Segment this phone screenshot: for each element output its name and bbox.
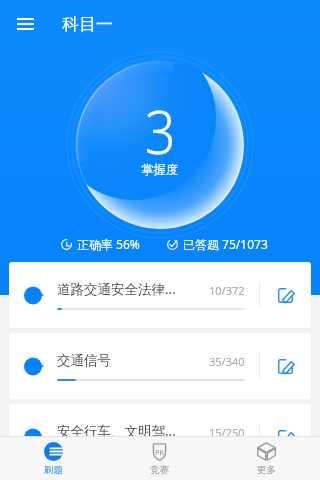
staticText: PK [155, 447, 165, 457]
staticText: 更多 [257, 464, 276, 476]
staticText: 安全行车、文明驾... [57, 422, 203, 440]
staticText: 3 [145, 90, 176, 172]
staticText: 35/340 [209, 354, 245, 369]
button[interactable]: 安全行车、文明驾... [9, 404, 311, 470]
staticText: 交通信号 [57, 352, 203, 369]
staticText: 掌握度 [141, 162, 179, 178]
staticText: 刷题 [44, 464, 63, 476]
staticText: 15/250 [209, 425, 245, 440]
button[interactable]: 交通信号 [9, 333, 311, 399]
staticText: 竞赛 [150, 464, 169, 476]
button[interactable]: Menu [0, 0, 42, 48]
staticText: 已答题 75/1073 [183, 236, 268, 252]
button[interactable]: Edit [260, 404, 311, 470]
button[interactable]: 更多 [213, 437, 320, 480]
staticText: 10/372 [209, 283, 245, 298]
button[interactable]: 道路交通安全法律... [9, 262, 311, 328]
staticText: 正确率 56% [77, 236, 140, 252]
button[interactable]: PK [106, 437, 213, 480]
staticText: 科目一 [62, 14, 113, 35]
button[interactable]: Edit [260, 333, 311, 399]
staticText: 道路交通安全法律... [57, 280, 203, 298]
button[interactable]: Edit [260, 262, 311, 328]
button[interactable]: 刷题 [0, 437, 106, 480]
